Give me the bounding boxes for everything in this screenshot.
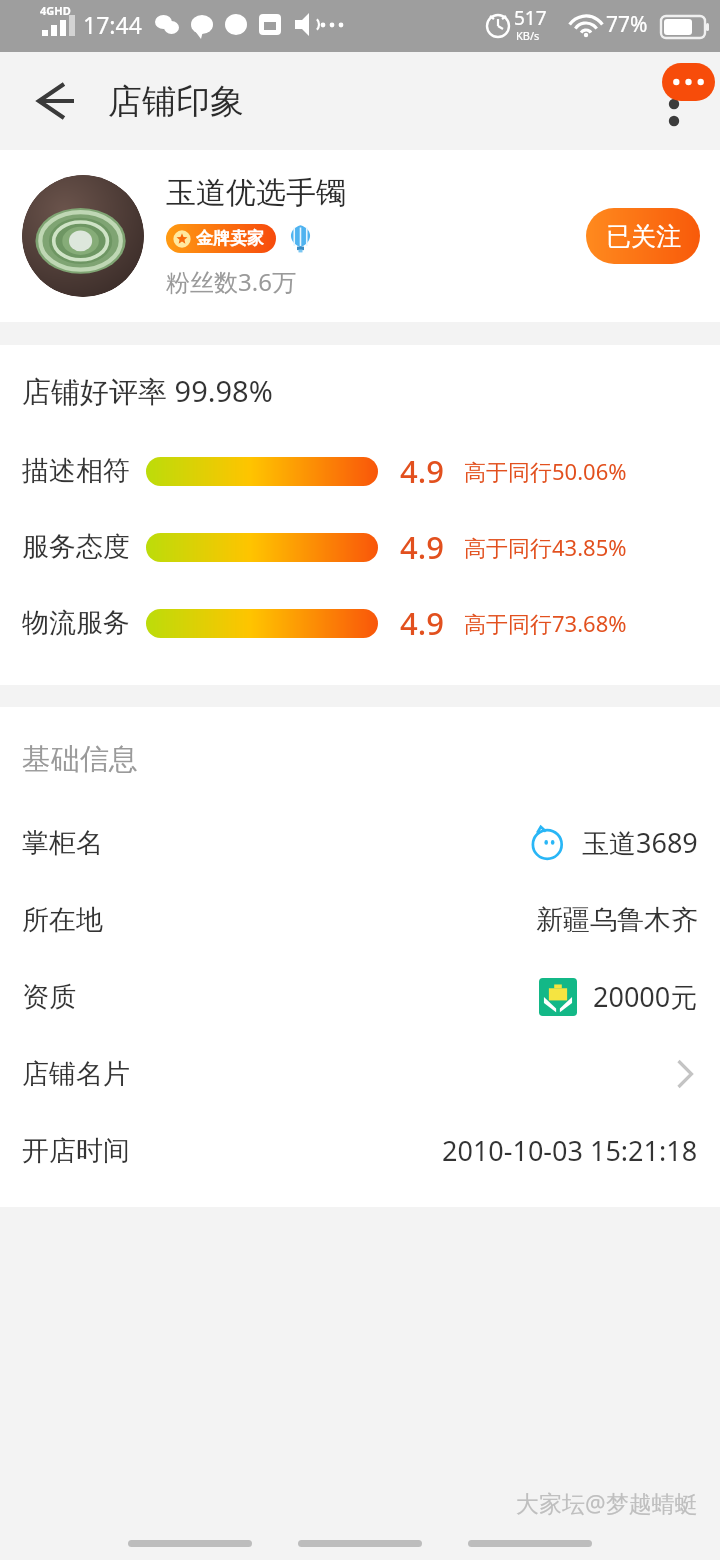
button[interactable]: 描述相符 [0,433,720,509]
staticText: 4.9 [400,526,444,568]
staticText: 17:44 [83,9,142,40]
button[interactable]: 金牌卖家 [166,224,276,253]
staticText: 高于同行73.68% [464,608,627,638]
staticText: 2010-10-03 15:21:18 [442,1132,698,1169]
staticText: 玉道3689 [582,824,698,861]
button[interactable]: Back [445,1532,615,1554]
button[interactable]: 已关注 [586,208,700,264]
staticText: 所在地 [22,903,103,937]
staticText: 20000元 [593,978,698,1015]
staticText: 玉道优选手镯 [166,174,346,212]
staticText: 517 [514,5,547,31]
button[interactable]: 玉道优选手镯 [0,150,720,322]
staticText: 高于同行50.06% [464,456,627,486]
staticText: 4.9 [400,450,444,492]
staticText: 物流服务 [22,606,130,640]
staticText: 资质 [22,980,76,1014]
button[interactable]: 开店时间 [0,1112,720,1189]
staticText: 掌柜名 [22,826,103,860]
button[interactable]: 服务态度 [0,509,720,585]
staticText: 基础信息 [22,741,138,778]
button[interactable]: Back [22,71,82,131]
staticText: 服务态度 [22,530,130,564]
button[interactable]: Home [275,1532,445,1554]
staticText: 店铺印象 [108,80,244,123]
staticText: 新疆乌鲁木齐 [536,903,698,937]
button[interactable]: 所在地 [0,881,720,958]
button[interactable]: 物流服务 [0,585,720,661]
staticText: KB/s [516,28,540,43]
staticText: 店铺好评率 99.98% [22,371,273,411]
staticText: 已关注 [606,221,681,252]
staticText: 开店时间 [22,1134,130,1168]
staticText: 77% [606,10,648,39]
button[interactable]: 资质 [0,958,720,1035]
button[interactable]: 掌柜名 [0,804,720,881]
staticText: 4.9 [400,602,444,644]
button[interactable]: Recents [105,1532,275,1554]
staticText: 店铺名片 [22,1057,130,1091]
staticText: 大家坛@梦越蜻蜓 [516,1487,698,1518]
button[interactable]: More options [642,69,706,133]
staticText: 4GHD [40,3,71,18]
staticText: 描述相符 [22,454,130,488]
staticText: 金牌卖家 [196,228,264,249]
staticText: 高于同行43.85% [464,532,627,562]
button[interactable]: 店铺名片 [0,1035,720,1112]
button[interactable]: Menu bubble [662,63,715,101]
staticText: 粉丝数3.6万 [166,265,296,298]
